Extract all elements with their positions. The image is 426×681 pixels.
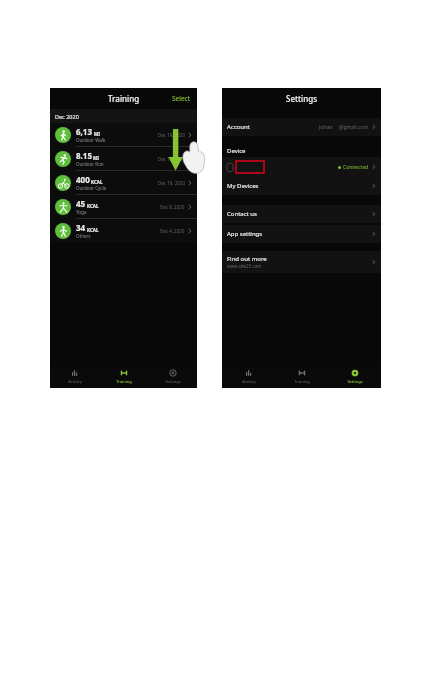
button[interactable]: Settings	[148, 366, 197, 388]
staticText: Activity	[68, 379, 82, 384]
button[interactable]: App settings	[222, 225, 381, 243]
button[interactable]: Account	[222, 118, 381, 136]
staticText: 8.15	[76, 150, 92, 161]
button[interactable]: 400	[50, 171, 197, 194]
button[interactable]: Activity	[222, 366, 275, 388]
staticText: Yoga	[76, 209, 87, 215]
staticText: Activity	[242, 379, 256, 384]
staticText: johan	[319, 124, 333, 131]
staticText: Dec 2020	[55, 113, 79, 120]
staticText: KCAL	[87, 227, 99, 233]
staticText: Dec 8, 2020	[160, 204, 185, 210]
staticText: Training	[294, 379, 310, 384]
button[interactable]: Settings	[328, 366, 381, 388]
staticText: 45	[76, 198, 86, 209]
staticText: Find out more	[227, 255, 267, 263]
staticText: Dec 19, 2020	[158, 180, 185, 186]
staticText: KCAL	[91, 179, 103, 185]
staticText: @gmail.com	[339, 124, 369, 131]
staticText: KCAL	[87, 203, 99, 209]
staticText: MI	[94, 131, 100, 137]
button[interactable]: Select	[166, 90, 197, 107]
staticText: My Devices	[227, 182, 259, 190]
button[interactable]: My Devices	[222, 177, 381, 195]
staticText: 400	[76, 174, 90, 185]
staticText: App settings	[227, 230, 263, 238]
button[interactable]: Activity	[50, 366, 99, 388]
button[interactable]: 45	[50, 195, 197, 218]
staticText: Settings	[165, 379, 181, 384]
button[interactable]: Training	[99, 366, 148, 388]
staticText: Training	[108, 93, 140, 104]
staticText: www.site25.com	[227, 263, 262, 269]
button[interactable]: 6,13	[50, 123, 197, 146]
button[interactable]: Contact us	[222, 205, 381, 223]
staticText: Connected	[343, 164, 369, 171]
staticText: Outdoor Cycle	[76, 185, 107, 191]
button[interactable]: Find out more	[222, 251, 381, 273]
staticText: Select	[172, 94, 191, 103]
staticText: Others	[76, 233, 91, 239]
button[interactable]: Watch	[222, 157, 381, 177]
staticText: Contact us	[227, 210, 257, 218]
staticText: Training	[116, 379, 132, 384]
button[interactable]: 34	[50, 219, 197, 242]
staticText: Account	[227, 123, 250, 131]
staticText: 34	[76, 222, 86, 233]
staticText: Dec 4, 2020	[160, 228, 185, 234]
staticText: Dec 19, 2020	[158, 132, 185, 138]
staticText: Settings	[347, 379, 363, 384]
other: Watch	[227, 162, 233, 173]
staticText: Dec 19, 2020	[158, 156, 185, 162]
staticText: Settings	[286, 93, 318, 104]
button[interactable]: Training	[275, 366, 328, 388]
staticText: Outdoor Walk	[76, 137, 106, 143]
staticText: MI	[93, 155, 99, 161]
staticText: Outdoor Run	[76, 161, 104, 167]
button[interactable]: 8.15	[50, 147, 197, 170]
staticText: 6,13	[76, 126, 93, 137]
staticText: Device	[227, 147, 246, 155]
